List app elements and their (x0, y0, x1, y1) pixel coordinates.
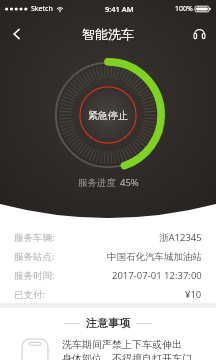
staticText: 服务进度 (78, 177, 116, 189)
button[interactable]: 紧急停止 (79, 86, 137, 144)
button[interactable]: 服务时间: (14, 266, 202, 285)
staticText: ¥10 (185, 288, 202, 301)
staticText: Sketch (31, 4, 53, 14)
staticText: 浙A12345 (159, 231, 202, 244)
staticText: 中国石化汽车城加油站 (107, 251, 202, 263)
button[interactable]: Back (0, 18, 34, 50)
staticText: 服务时间: (14, 269, 55, 282)
staticText: 洗车期间严禁上下车或伸出 身体部位，不得擅自打开车门 (62, 338, 192, 360)
button[interactable]: 已支付: (14, 285, 202, 304)
staticText: 服务车辆: (14, 231, 55, 244)
staticText: 服务站点: (14, 250, 55, 263)
staticText: 2017-07-01 12:37:00 (112, 269, 202, 282)
button[interactable]: 服务车辆: (14, 228, 202, 247)
staticText: 注意事项 (86, 316, 130, 330)
staticText: 100% (175, 4, 193, 14)
staticText: 已支付: (14, 288, 46, 301)
staticText: 智能洗车 (82, 26, 134, 42)
staticText: 9:41 AM (105, 4, 134, 14)
staticText: 45% (120, 176, 139, 189)
staticText: 紧急停止 (88, 109, 128, 122)
button[interactable]: 服务站点: (14, 247, 202, 266)
button[interactable]: Customer service (182, 18, 216, 50)
